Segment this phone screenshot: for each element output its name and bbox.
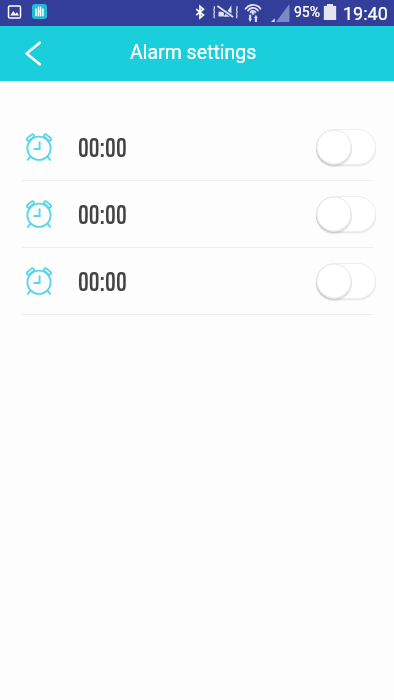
staticText: 95% [294, 4, 320, 20]
button[interactable]: Toggle alarm [316, 129, 376, 165]
button[interactable]: Back [0, 26, 62, 81]
staticText: 19:40 [343, 3, 388, 24]
staticText: 00:00 [78, 260, 127, 302]
button[interactable]: Toggle alarm [316, 196, 376, 232]
staticText: Alarm settings [130, 41, 257, 64]
button[interactable]: 00:00 [0, 248, 394, 315]
button[interactable]: 00:00 [0, 181, 394, 248]
staticText: 00:00 [78, 193, 127, 235]
button[interactable]: Toggle alarm [316, 263, 376, 299]
button[interactable]: 00:00 [0, 114, 394, 181]
staticText: 00:00 [78, 126, 127, 168]
